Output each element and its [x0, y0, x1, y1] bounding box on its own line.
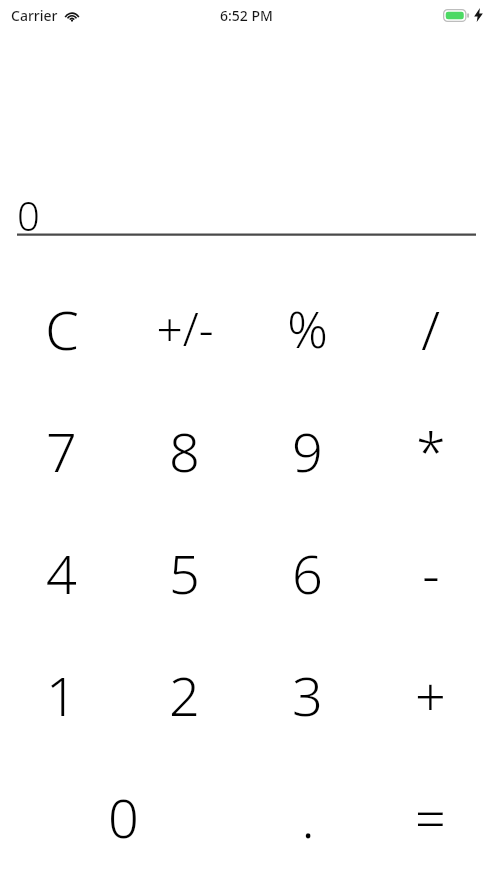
button[interactable]: C: [0, 267, 123, 390]
button[interactable]: .: [246, 756, 369, 878]
button[interactable]: 0: [0, 756, 246, 878]
staticText: 4: [46, 536, 77, 610]
staticText: C: [45, 292, 79, 366]
button[interactable]: %: [246, 267, 369, 390]
button[interactable]: 2: [123, 634, 246, 756]
button[interactable]: 7: [0, 390, 123, 512]
staticText: 6: [292, 536, 323, 610]
button[interactable]: -: [369, 512, 492, 634]
button[interactable]: *: [369, 390, 492, 512]
staticText: =: [415, 780, 446, 854]
staticText: 7: [46, 414, 77, 488]
button[interactable]: 3: [246, 634, 369, 756]
button[interactable]: 6: [246, 512, 369, 634]
staticText: +: [415, 658, 446, 732]
staticText: 5: [169, 536, 200, 610]
button[interactable]: 5: [123, 512, 246, 634]
staticText: -: [422, 536, 440, 610]
staticText: %: [287, 295, 328, 363]
button[interactable]: /: [369, 267, 492, 390]
staticText: 8: [169, 414, 200, 488]
staticText: 6:52 PM: [220, 6, 273, 25]
button[interactable]: +/-: [123, 267, 246, 390]
button[interactable]: =: [369, 756, 492, 878]
staticText: *: [416, 414, 446, 488]
staticText: 0: [17, 188, 40, 232]
staticText: 3: [292, 658, 323, 732]
staticText: +/-: [156, 297, 214, 360]
staticText: Carrier: [11, 6, 58, 25]
staticText: /: [421, 292, 440, 366]
button[interactable]: 8: [123, 390, 246, 512]
staticText: 1: [46, 658, 77, 732]
button[interactable]: 4: [0, 512, 123, 634]
staticText: .: [301, 780, 315, 854]
staticText: 9: [292, 414, 323, 488]
button[interactable]: 9: [246, 390, 369, 512]
button[interactable]: 1: [0, 634, 123, 756]
staticText: 2: [169, 658, 200, 732]
button[interactable]: +: [369, 634, 492, 756]
staticText: 0: [108, 780, 139, 854]
